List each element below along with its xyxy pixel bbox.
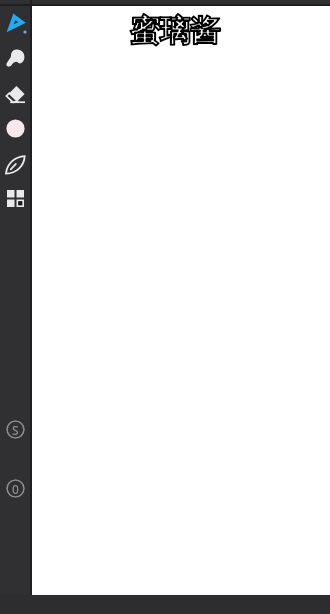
staticText: 蜜璃酱 xyxy=(130,12,220,50)
button[interactable]: Smudge xyxy=(0,42,30,74)
button[interactable]: Opacity xyxy=(0,472,30,504)
staticText: 0 xyxy=(12,481,19,497)
button[interactable]: Layers xyxy=(0,182,30,214)
button[interactable]: Brush xyxy=(0,6,30,38)
button[interactable]: Eraser xyxy=(0,78,30,110)
staticText: 蜜璃酱 xyxy=(130,12,220,50)
staticText: S xyxy=(12,422,19,438)
button[interactable]: Leaf brush xyxy=(0,148,30,180)
button[interactable]: Brush size xyxy=(0,413,30,445)
button[interactable]: Colour xyxy=(0,112,30,144)
